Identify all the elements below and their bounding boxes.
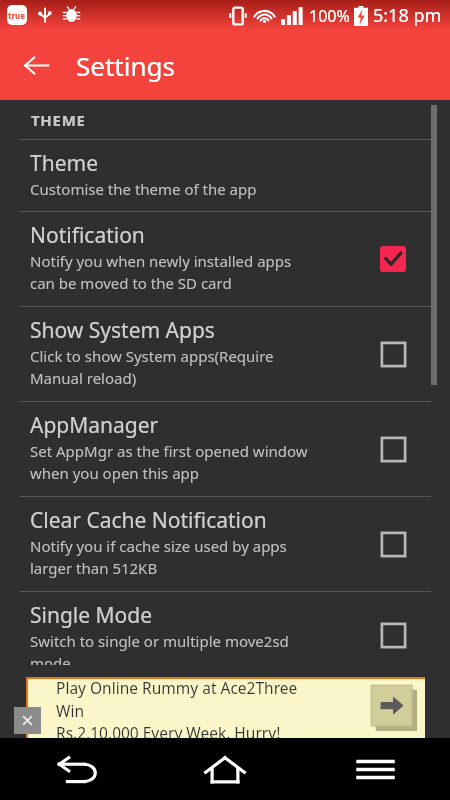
staticText: Notification: [30, 221, 145, 250]
staticText: AppManager: [30, 411, 159, 440]
staticText: 100%: [309, 5, 350, 27]
button[interactable]: Notification: [374, 240, 412, 278]
staticText: THEME: [31, 110, 86, 130]
staticText: true: [8, 10, 26, 21]
staticText: Play Online Rummy at Ace2Three Win: [56, 677, 329, 722]
staticText: Rs.2,10,000 Every Week. Hurry!: [56, 722, 281, 738]
button[interactable]: Show System Apps: [374, 335, 412, 373]
button[interactable]: Show System Apps: [0, 307, 450, 402]
button[interactable]: Clear Cache Notification: [374, 525, 412, 563]
staticText: Settings: [76, 48, 175, 83]
button[interactable]: AppManager: [374, 430, 412, 468]
staticText: Switch to single or multiple move2sd mod…: [30, 631, 289, 665]
staticText: Set AppMgr as the first opened window wh…: [30, 441, 308, 484]
staticText: Theme: [30, 149, 98, 178]
staticText: Single Mode: [30, 601, 153, 630]
button[interactable]: Single Mode: [374, 616, 412, 654]
button[interactable]: AppManager: [0, 402, 450, 497]
button[interactable]: Single Mode: [0, 592, 450, 677]
staticText: Show System Apps: [30, 316, 215, 345]
staticText: Notify you when newly installed apps can…: [30, 251, 292, 294]
staticText: Notify you if cache size used by apps la…: [30, 536, 287, 579]
staticText: Click to show System apps(Require Manual…: [30, 346, 274, 389]
button[interactable]: Recent apps: [300, 738, 450, 800]
button[interactable]: Clear Cache Notification: [0, 497, 450, 592]
button[interactable]: Play Online Rummy at Ace2Three Win: [26, 677, 425, 738]
button[interactable]: Back: [0, 738, 150, 800]
button[interactable]: Home: [150, 738, 300, 800]
staticText: Customise the theme of the app: [30, 179, 257, 199]
button[interactable]: Open advertisement: [369, 683, 419, 733]
button[interactable]: Notification: [0, 212, 450, 307]
staticText: Clear Cache Notification: [30, 506, 267, 535]
button[interactable]: Back: [14, 43, 58, 87]
button[interactable]: Close advertisement: [14, 707, 41, 734]
staticText: 5:18 pm: [373, 3, 442, 28]
button[interactable]: Theme: [0, 140, 450, 212]
